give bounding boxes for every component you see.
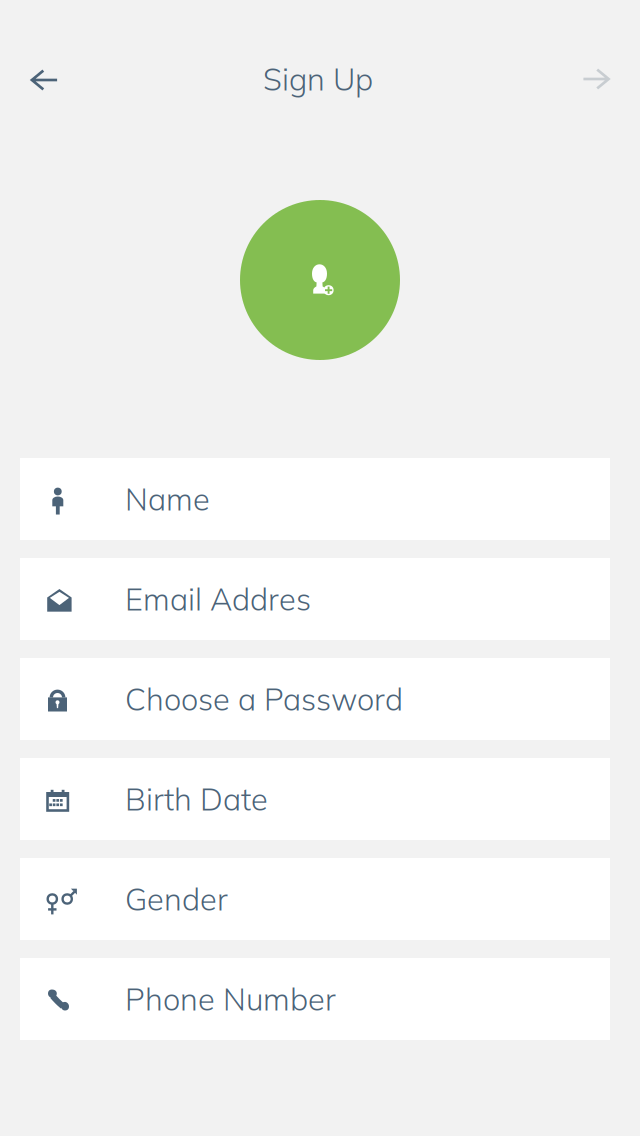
button[interactable]: Birth Date <box>20 758 610 840</box>
button[interactable]: Next <box>556 49 640 109</box>
staticText: Sign Up <box>263 60 373 98</box>
staticText: Email Addres <box>125 580 311 618</box>
button[interactable]: Choose a Password <box>20 658 610 740</box>
button[interactable]: Gender <box>20 858 610 940</box>
staticText: Birth Date <box>125 780 268 818</box>
button[interactable]: Name <box>20 458 610 540</box>
staticText: Phone Number <box>125 980 336 1018</box>
button[interactable]: Back <box>0 49 85 109</box>
staticText: Gender <box>125 880 228 918</box>
staticText: Choose a Password <box>125 680 403 718</box>
button[interactable]: Email Addres <box>20 558 610 640</box>
staticText: Name <box>125 480 210 518</box>
button[interactable]: Phone Number <box>20 958 610 1040</box>
